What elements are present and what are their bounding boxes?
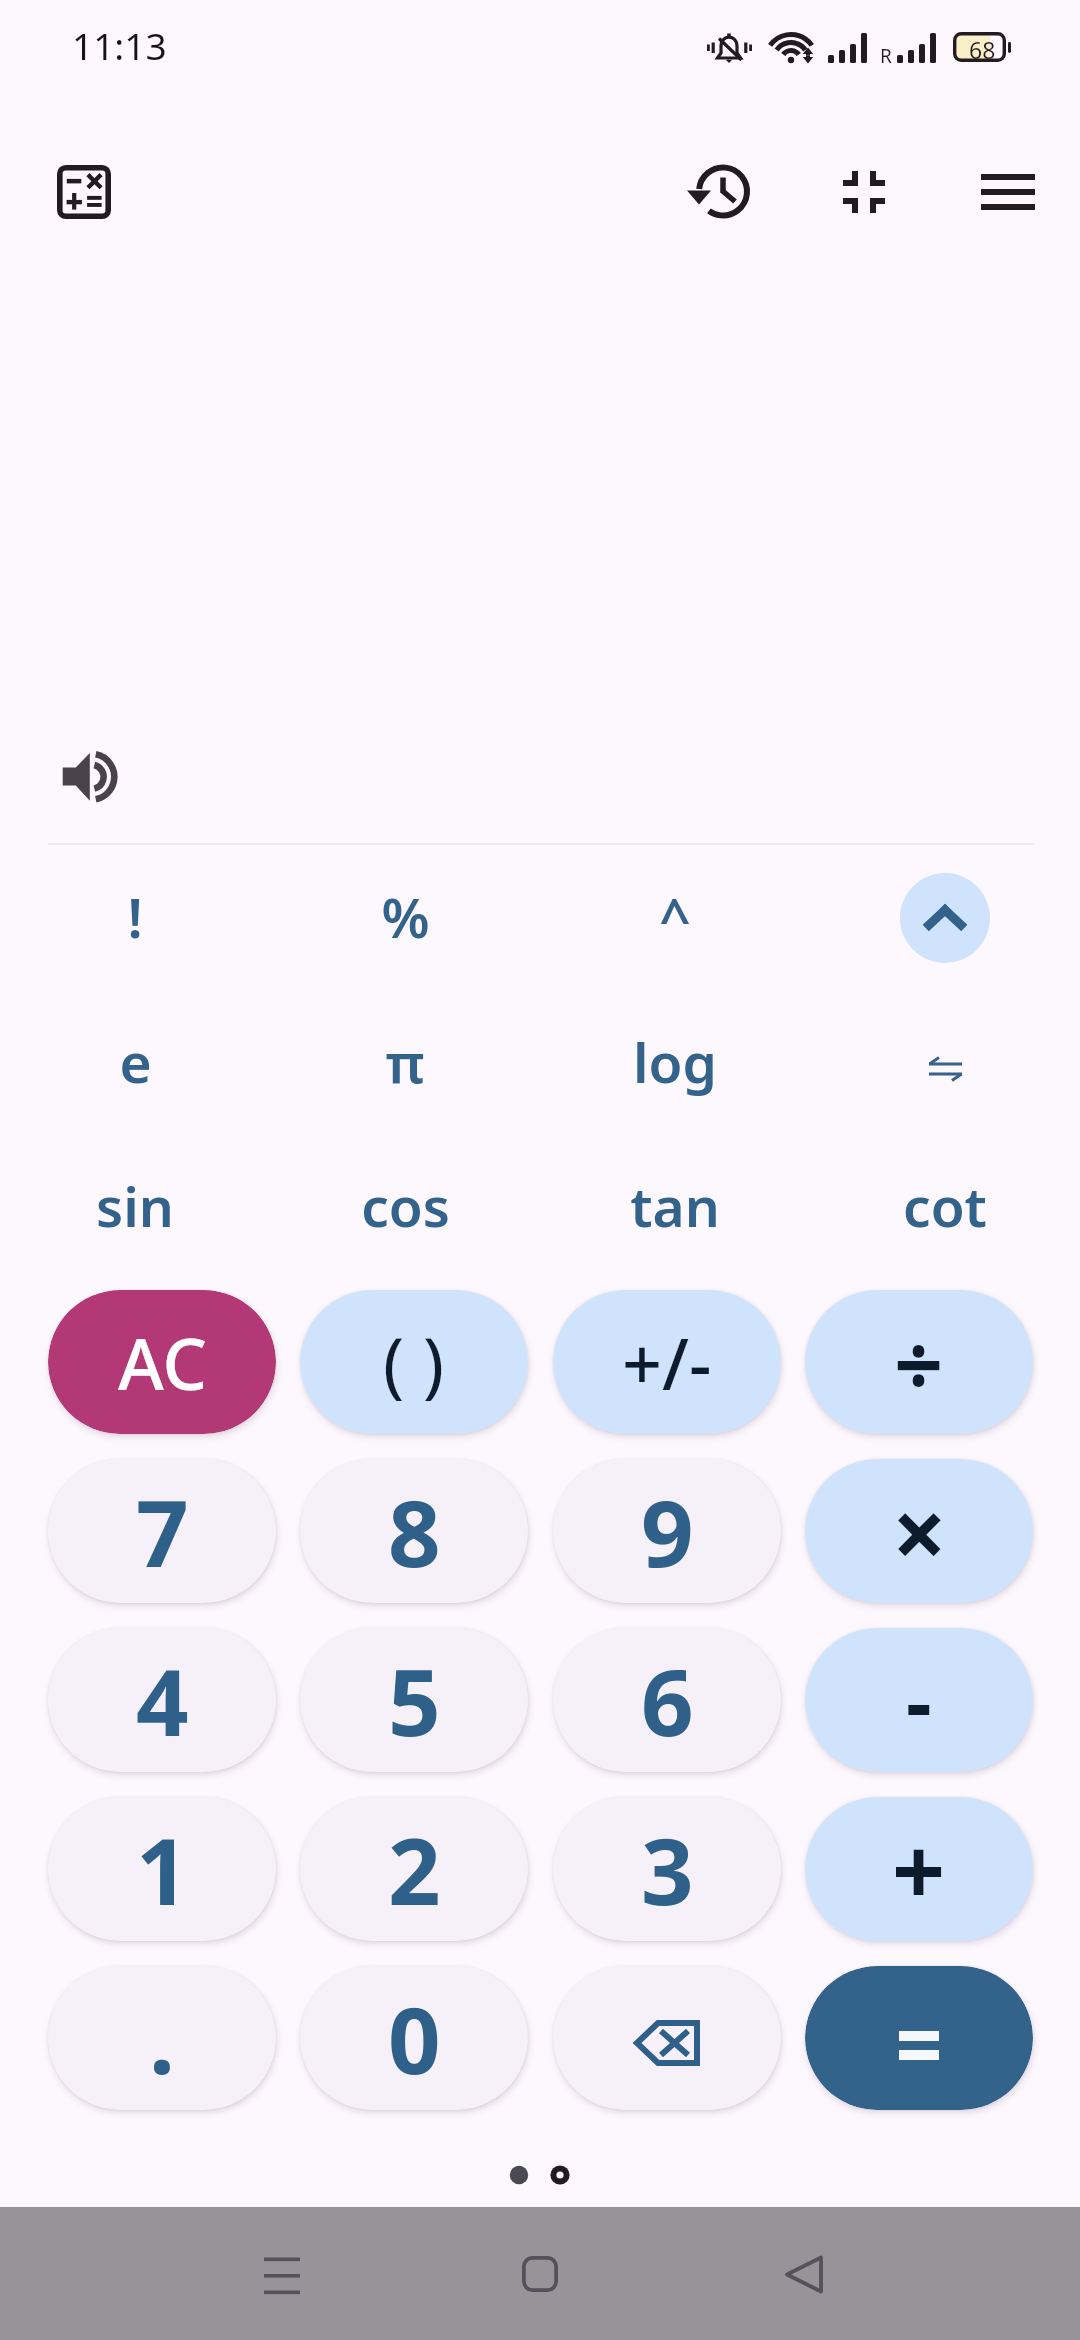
button[interactable]: × [805, 1459, 1033, 1603]
staticText: cos [361, 1168, 450, 1243]
button[interactable]: π [270, 1006, 540, 1116]
button[interactable]: ( ) [300, 1290, 528, 1434]
button[interactable]: Backspace [553, 1966, 781, 2110]
button[interactable]: 8 [300, 1459, 528, 1603]
staticText: log [633, 1024, 717, 1099]
button[interactable]: ÷ [805, 1290, 1033, 1434]
button[interactable]: 4 [48, 1628, 276, 1772]
staticText: 8 [388, 1469, 441, 1594]
staticText: AC [118, 1315, 207, 1410]
button[interactable]: Collapse [808, 136, 920, 248]
staticText: π [385, 1024, 425, 1099]
button[interactable]: cos [270, 1150, 540, 1260]
button[interactable]: Calculator [30, 138, 138, 246]
button[interactable]: 6 [553, 1628, 781, 1772]
staticText: 6 [641, 1638, 694, 1763]
button[interactable]: Recents [232, 2224, 332, 2324]
button[interactable]: Equals [805, 1966, 1033, 2110]
staticText: 0 [388, 1976, 441, 2101]
button[interactable]: Swap [890, 1018, 1000, 1128]
button[interactable]: History [659, 136, 771, 248]
button[interactable]: Home [490, 2224, 590, 2324]
button[interactable]: . [48, 1966, 276, 2110]
button[interactable]: e [0, 1006, 270, 1116]
staticText: × [892, 1466, 947, 1597]
staticText: tan [630, 1168, 720, 1243]
staticText: +/- [622, 1315, 712, 1410]
staticText: 4 [136, 1638, 189, 1763]
staticText: 11:13 [72, 20, 167, 70]
button[interactable]: AC [48, 1290, 276, 1434]
button[interactable]: tan [540, 1150, 810, 1260]
button[interactable]: +/- [553, 1290, 781, 1434]
staticText: - [906, 1646, 932, 1755]
staticText: . [149, 1976, 175, 2101]
staticText: 9 [641, 1469, 694, 1594]
button[interactable]: sin [0, 1150, 270, 1260]
staticText: + [892, 1806, 946, 1933]
button[interactable]: log [540, 1006, 810, 1116]
button[interactable]: cot [810, 1150, 1080, 1260]
button[interactable]: 3 [553, 1797, 781, 1941]
button[interactable]: 7 [48, 1459, 276, 1603]
button[interactable]: Sound [34, 722, 146, 834]
staticText: 3 [641, 1807, 694, 1932]
button[interactable]: 9 [553, 1459, 781, 1603]
staticText: ^ [659, 879, 691, 954]
button[interactable]: % [270, 861, 540, 971]
staticText: 68 [969, 34, 996, 64]
staticText: sin [96, 1168, 174, 1243]
button[interactable]: ^ [540, 861, 810, 971]
staticText: 2 [388, 1807, 441, 1932]
staticText: ÷ [894, 1304, 944, 1421]
staticText: cot [903, 1168, 987, 1243]
staticText: 1 [136, 1807, 189, 1932]
staticText: e [119, 1024, 152, 1099]
staticText: 7 [136, 1469, 189, 1594]
button[interactable]: ! [0, 861, 270, 971]
button[interactable]: Back [753, 2224, 853, 2324]
staticText: ( ) [383, 1314, 445, 1411]
button[interactable]: - [805, 1628, 1033, 1772]
button[interactable]: 2 [300, 1797, 528, 1941]
staticText: ! [127, 879, 143, 954]
button[interactable]: Menu [952, 136, 1064, 248]
button[interactable]: 0 [300, 1966, 528, 2110]
button[interactable]: Expand [900, 873, 990, 963]
staticText: R [880, 43, 892, 69]
button[interactable]: 1 [48, 1797, 276, 1941]
staticText: 5 [388, 1638, 441, 1763]
staticText: % [381, 879, 430, 954]
button[interactable]: 5 [300, 1628, 528, 1772]
button[interactable]: + [805, 1797, 1033, 1941]
